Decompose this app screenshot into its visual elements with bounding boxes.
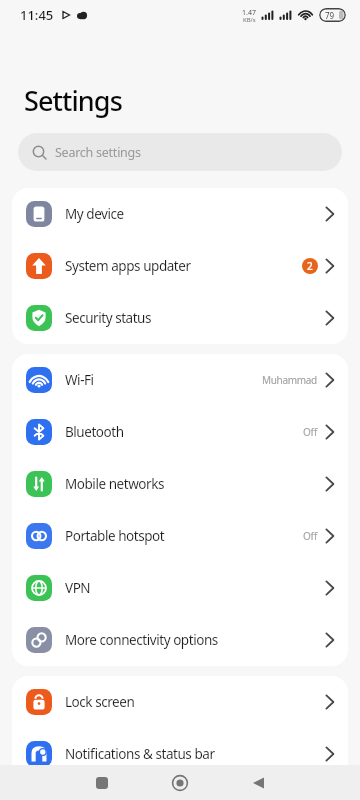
button[interactable]: Security status [12,292,348,344]
button[interactable]: Portable hotspot [12,510,348,562]
button[interactable]: VPN [12,562,348,614]
staticText: Off [303,425,317,439]
staticText: More connectivity options [65,631,218,649]
staticText: Search settings [55,144,141,161]
staticText: KB/s [243,16,256,23]
button[interactable]: Search settings [18,133,342,171]
staticText: 11:45 [20,6,54,24]
button[interactable]: Bluetooth [12,406,348,458]
staticText: My device [65,205,124,223]
staticText: Notifications & status bar [65,745,215,763]
staticText: Off [303,529,317,543]
staticText: 79 [325,10,335,21]
staticText: Portable hotspot [65,527,165,545]
button[interactable]: Wi-Fi [12,354,348,406]
button[interactable]: Lock screen [12,676,348,728]
button[interactable]: Mobile networks [12,458,348,510]
button[interactable] [63,765,141,800]
button[interactable]: System apps updater [12,240,348,292]
button[interactable] [219,765,297,800]
button[interactable]: More connectivity options [12,614,348,666]
staticText: Wi-Fi [65,371,94,389]
staticText: Lock screen [65,693,135,711]
staticText: Muhammad [262,373,317,387]
staticText: VPN [65,579,91,597]
staticText: Security status [65,309,152,327]
button[interactable]: My device [12,188,348,240]
staticText: Mobile networks [65,475,164,493]
button[interactable]: Notifications & status bar [12,728,348,780]
staticText: System apps updater [65,257,191,275]
staticText: 1.47 [242,8,256,16]
staticText: 2 [307,259,313,273]
button[interactable] [141,765,219,800]
staticText: Bluetooth [65,423,124,441]
staticText: Settings [24,82,122,119]
